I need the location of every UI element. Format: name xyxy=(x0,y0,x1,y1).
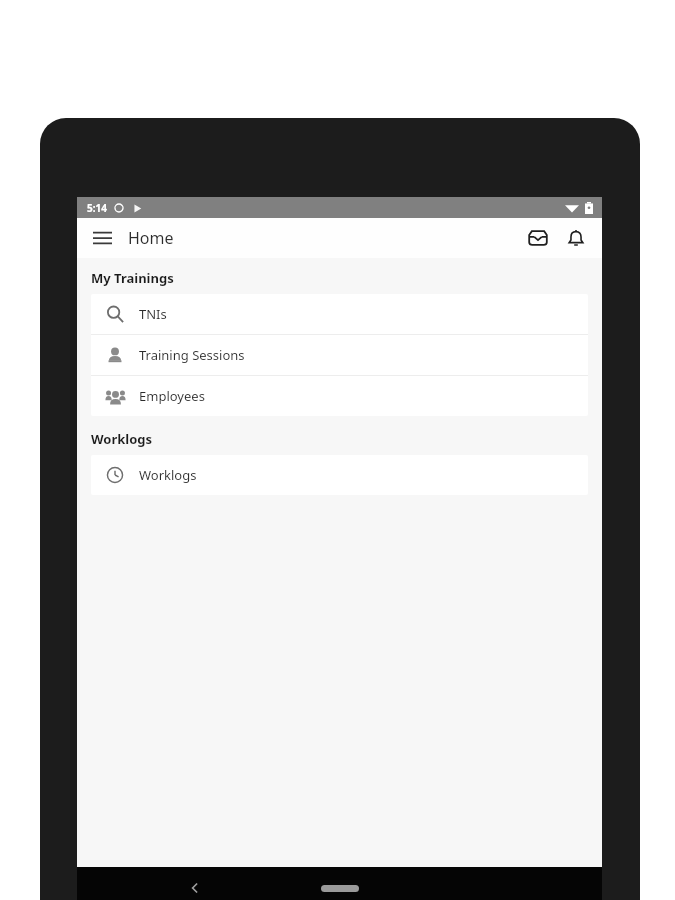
button[interactable]: Open navigation menu xyxy=(85,221,119,255)
staticText: Worklogs xyxy=(139,466,197,484)
staticText: 5:14 xyxy=(87,201,107,215)
button[interactable]: Worklogs xyxy=(91,455,588,495)
button[interactable]: Notifications xyxy=(558,220,594,256)
staticText: Worklogs xyxy=(91,430,153,448)
button[interactable]: Training Sessions xyxy=(91,335,588,375)
staticText: Employees xyxy=(139,387,205,405)
button[interactable]: Employees xyxy=(91,376,588,416)
button[interactable]: Home xyxy=(312,873,368,900)
staticText: My Trainings xyxy=(91,269,174,287)
staticText: Home xyxy=(128,227,174,249)
button[interactable]: Inbox xyxy=(520,220,556,256)
staticText: TNIs xyxy=(139,305,167,323)
staticText: Training Sessions xyxy=(139,346,245,364)
button[interactable]: Back xyxy=(171,867,219,900)
button[interactable]: TNIs xyxy=(91,294,588,334)
